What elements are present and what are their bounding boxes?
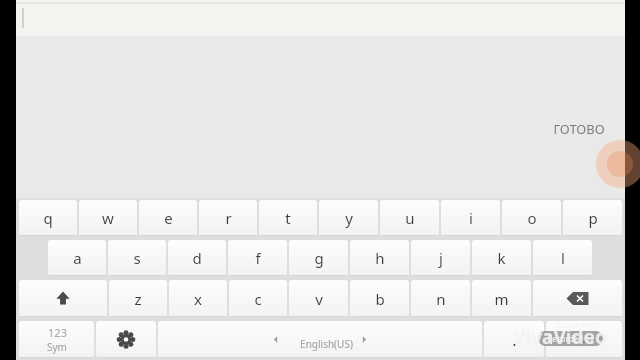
button[interactable]: Space [158, 321, 482, 358]
button[interactable]: k [472, 240, 531, 276]
button[interactable]: d [168, 240, 226, 276]
button[interactable]: Settings [96, 321, 156, 358]
staticText: h [375, 248, 385, 268]
staticText: w [102, 208, 114, 228]
button[interactable]: u [380, 200, 439, 236]
staticText: a [73, 248, 82, 268]
staticText: t [285, 208, 291, 228]
button[interactable]: c [229, 280, 287, 317]
button[interactable]: Backspace [533, 280, 622, 317]
button[interactable]: h [350, 240, 409, 276]
button[interactable]: t [259, 200, 317, 236]
staticText: . [512, 329, 517, 351]
button[interactable]: n [411, 280, 470, 317]
staticText: m [494, 289, 509, 309]
staticText: Recorded by [547, 333, 594, 344]
staticText: VivaVideo [513, 324, 607, 350]
button[interactable]: r [199, 200, 257, 236]
button[interactable]: w [79, 200, 137, 236]
staticText: q [43, 208, 53, 228]
staticText: z [134, 289, 142, 309]
button[interactable]: p [563, 200, 622, 236]
button[interactable]: s [108, 240, 166, 276]
button[interactable]: i [441, 200, 500, 236]
staticText: k [497, 248, 506, 268]
staticText: Made with [556, 318, 601, 330]
staticText: p [588, 208, 598, 228]
staticText: ГОТОВО [553, 120, 605, 138]
button[interactable]: z [109, 280, 167, 317]
staticText: y [345, 208, 353, 228]
button[interactable]: x [169, 280, 227, 317]
button[interactable]: o [502, 200, 561, 236]
staticText: l [561, 248, 565, 268]
button[interactable]: Symbols [19, 321, 94, 358]
staticText: o [527, 208, 537, 228]
staticText: e [164, 208, 173, 228]
staticText: u [405, 208, 415, 228]
staticText: g [314, 248, 324, 268]
staticText: x [194, 289, 202, 309]
staticText: 123 [48, 325, 67, 340]
button[interactable]: j [411, 240, 470, 276]
button[interactable]: e [139, 200, 197, 236]
button[interactable]: Enter [546, 321, 622, 358]
button[interactable]: y [319, 200, 378, 236]
button[interactable]: f [228, 240, 287, 276]
staticText: i [469, 208, 473, 228]
button[interactable]: a [48, 240, 106, 276]
button[interactable]: ГОТОВО [553, 120, 605, 138]
staticText: Sym [47, 340, 67, 354]
staticText: r [225, 208, 232, 228]
button[interactable]: g [289, 240, 348, 276]
staticText: j [439, 248, 443, 268]
button[interactable]: Shift [19, 280, 107, 317]
button[interactable]: l [533, 240, 592, 276]
staticText: s [133, 248, 141, 268]
button[interactable]: . [484, 321, 544, 358]
staticText: c [254, 289, 262, 309]
staticText: v [315, 289, 323, 309]
button[interactable]: q [19, 200, 77, 236]
staticText: f [255, 248, 261, 268]
staticText: b [375, 289, 385, 309]
button[interactable]: v [289, 280, 348, 317]
button[interactable]: b [350, 280, 409, 317]
staticText: n [436, 289, 446, 309]
staticText: English(US) [300, 337, 353, 351]
button[interactable]: m [472, 280, 531, 317]
staticText: d [192, 248, 202, 268]
